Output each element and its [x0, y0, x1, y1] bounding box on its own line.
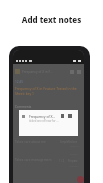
staticText: Sheet: key 1	[15, 91, 35, 96]
staticText: Takes care management	[15, 158, 52, 162]
staticText: Redone	[68, 140, 78, 144]
staticText: Frequency of X...	[29, 114, 56, 119]
staticText: 1 / 2	[59, 159, 65, 163]
staticText: Frequency of X in Feature Tested in the	[15, 86, 77, 91]
staticText: Add text notes	[0, 14, 103, 25]
staticText: Takes care about me	[15, 140, 46, 144]
staticText: Comments	[15, 105, 32, 109]
staticText: 12:45	[15, 80, 24, 84]
staticText: ticked one off new for ...	[29, 119, 59, 123]
staticText: Simple	[60, 140, 69, 144]
staticText: Prepare	[68, 159, 78, 163]
staticText: Frequency of X in F...	[22, 70, 53, 74]
